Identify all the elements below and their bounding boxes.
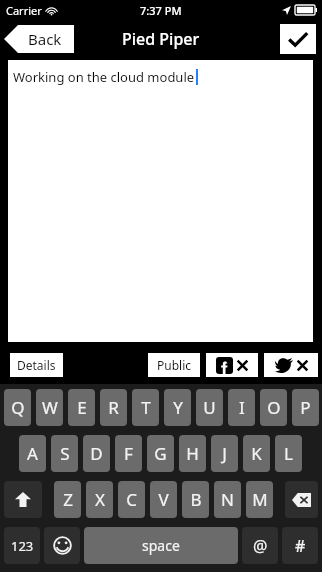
button[interactable]: 123	[4, 527, 40, 564]
staticText: V	[158, 488, 169, 511]
staticText: W	[42, 396, 58, 419]
button[interactable]: P	[292, 389, 319, 426]
staticText: @	[253, 535, 268, 557]
staticText: M	[252, 488, 268, 511]
button[interactable]: B	[182, 481, 209, 518]
staticText: H	[186, 442, 199, 465]
button[interactable]: V	[150, 481, 177, 518]
staticText: 123	[11, 537, 34, 555]
button[interactable]: Twitter sharing off	[264, 353, 318, 377]
staticText: #	[295, 535, 306, 557]
button[interactable]: E	[68, 389, 95, 426]
button[interactable]: L	[275, 435, 302, 472]
button[interactable]: W	[36, 389, 63, 426]
button[interactable]: Emoji	[44, 527, 80, 564]
staticText: T	[141, 396, 151, 419]
staticText: R	[108, 396, 119, 419]
button[interactable]: Q	[4, 389, 31, 426]
button[interactable]: N	[214, 481, 241, 518]
staticText: Z	[63, 488, 73, 511]
staticText: L	[284, 442, 293, 465]
button[interactable]: H	[179, 435, 206, 472]
staticText: Pied Piper	[122, 28, 200, 50]
button[interactable]: C	[118, 481, 145, 518]
staticText: G	[154, 442, 167, 465]
staticText: Q	[11, 396, 25, 419]
staticText: Public	[157, 357, 192, 373]
staticText: Carrier	[6, 3, 42, 18]
staticText: S	[60, 442, 70, 465]
button[interactable]: Backspace	[285, 481, 318, 518]
staticText: N	[221, 488, 234, 511]
staticText: P	[300, 396, 311, 419]
button[interactable]: #	[282, 527, 318, 564]
button[interactable]: Facebook sharing off	[206, 353, 258, 377]
staticText: F	[124, 442, 133, 465]
staticText: D	[90, 442, 103, 465]
button[interactable]: F	[115, 435, 142, 472]
button[interactable]: A	[19, 435, 46, 472]
button[interactable]: @	[242, 527, 278, 564]
staticText: Working on the cloud module	[13, 68, 195, 86]
staticText: Y	[173, 396, 183, 419]
button[interactable]: O	[260, 389, 287, 426]
button[interactable]: S	[51, 435, 78, 472]
button[interactable]: Details	[10, 353, 63, 377]
button[interactable]: Y	[164, 389, 191, 426]
button[interactable]: Shift	[4, 481, 42, 518]
staticText: B	[190, 488, 202, 511]
button[interactable]: J	[211, 435, 238, 472]
staticText: Details	[17, 357, 56, 373]
staticText: K	[251, 442, 262, 465]
button[interactable]: M	[246, 481, 273, 518]
button[interactable]: I	[228, 389, 255, 426]
staticText: 7:37 PM	[140, 3, 182, 18]
staticText: space	[142, 536, 180, 555]
button[interactable]: K	[243, 435, 270, 472]
button[interactable]: Z	[54, 481, 81, 518]
staticText: U	[203, 396, 216, 419]
staticText: X	[95, 488, 105, 511]
button[interactable]: G	[147, 435, 174, 472]
staticText: O	[267, 396, 281, 419]
button[interactable]: U	[196, 389, 223, 426]
button[interactable]: R	[100, 389, 127, 426]
staticText: A	[27, 442, 38, 465]
button[interactable]: Back	[4, 25, 74, 53]
button[interactable]: D	[83, 435, 110, 472]
button[interactable]: X	[86, 481, 113, 518]
staticText: Back	[28, 29, 62, 49]
button[interactable]: Public	[148, 353, 200, 377]
staticText: E	[77, 396, 87, 419]
staticText: C	[126, 488, 137, 511]
button[interactable]: Done	[280, 24, 316, 54]
staticText: J	[222, 442, 227, 465]
button[interactable]: T	[132, 389, 159, 426]
button[interactable]: space	[84, 527, 238, 564]
staticText: I	[239, 396, 245, 419]
button[interactable]: Working on the cloud module	[8, 60, 313, 342]
